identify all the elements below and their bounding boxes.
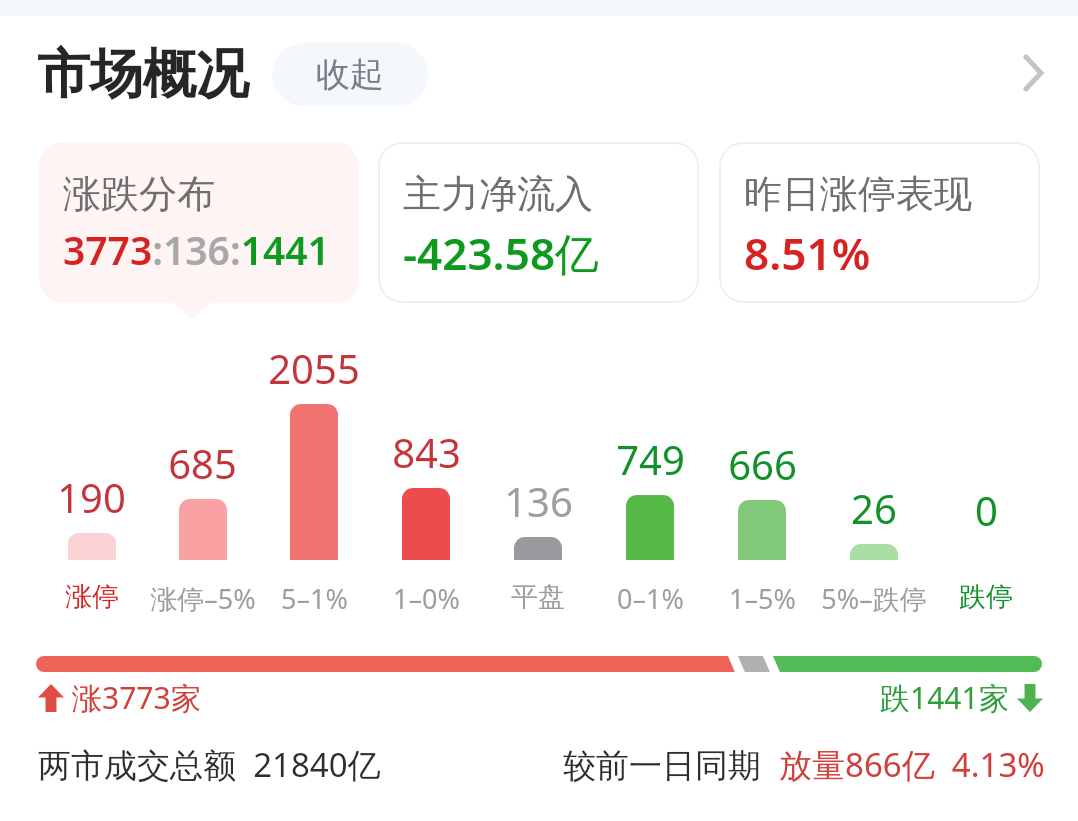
staticText: 放量866亿 4.13% [779,742,1045,787]
button[interactable]: 5–1% 2055 [258,330,370,612]
button[interactable]: 涨停 190 [36,330,147,612]
staticText: 涨3773家 [72,677,201,718]
button[interactable]: 5%–跌停 26 [818,330,930,612]
staticText: 1–0% [393,580,460,617]
staticText: 666 [728,437,797,491]
button[interactable]: 主力净流入 [378,142,699,303]
button[interactable]: 0–1% 749 [594,330,706,612]
staticText: 收起 [316,53,384,96]
staticText: 昨日涨停表现 [744,170,972,218]
staticText: 两市成交总额 21840亿 [38,742,381,787]
other: Advancing [38,684,64,712]
staticText: 190 [57,470,126,524]
staticText: 较前一日同期 [563,742,779,787]
staticText: 749 [616,432,685,486]
other: Declining [1017,684,1043,712]
staticText: 26 [851,481,897,535]
staticText: 1–5% [729,580,796,617]
button[interactable]: Expand [1006,47,1058,99]
staticText: 3773:136:1441 [63,223,330,276]
staticText: 5–1% [281,580,348,617]
staticText: 跌1441家 [880,677,1009,718]
staticText: 0 [975,483,998,537]
button[interactable]: 收起 [272,43,428,106]
staticText: 5%–跌停 [821,580,927,617]
staticText: 685 [168,436,237,490]
staticText: 市场概况 [37,41,249,108]
staticText: 涨停 [65,580,119,614]
button[interactable]: 1–5% 666 [706,330,818,612]
staticText: 主力净流入 [403,170,593,218]
button[interactable]: 涨停–5% 685 [147,330,258,612]
button[interactable]: 涨跌分布 [39,142,359,303]
staticText: 平盘 [511,580,565,614]
staticText: 跌停 [959,580,1013,614]
staticText: 涨跌分布 [63,170,215,218]
staticText: 843 [392,425,461,479]
button[interactable]: 1–0% 843 [370,330,482,612]
button[interactable]: 平盘 136 [482,330,594,612]
staticText: 2055 [268,341,360,395]
button[interactable]: 昨日涨停表现 [719,142,1040,303]
staticText: -423.58亿 [403,223,600,283]
button[interactable]: 跌停 0 [930,330,1042,612]
staticText: 8.51% [744,223,871,283]
staticText: 136 [504,474,573,528]
staticText: 涨停–5% [150,580,256,617]
staticText: 0–1% [617,580,684,617]
